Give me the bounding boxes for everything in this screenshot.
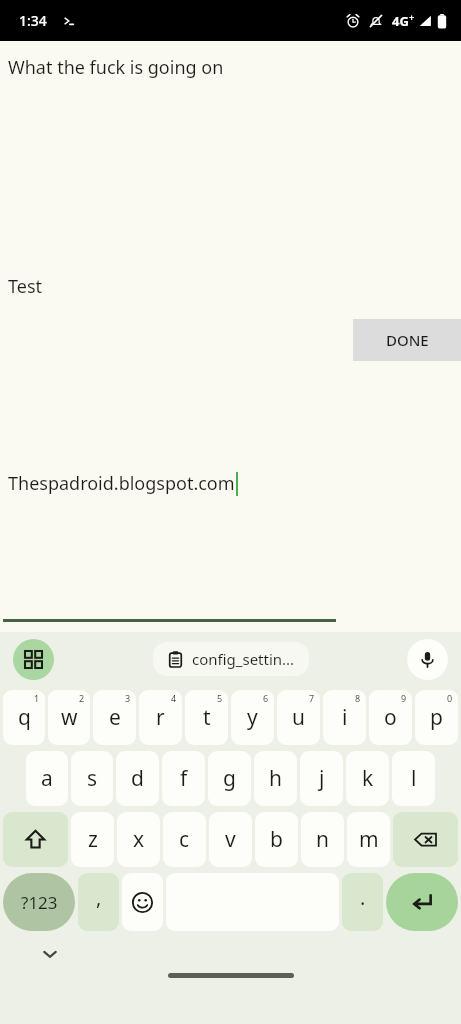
staticText: What the fuck is going on: [8, 55, 224, 80]
staticText: e: [109, 703, 121, 732]
staticText: c: [179, 825, 190, 854]
staticText: d: [131, 764, 144, 793]
button[interactable]: DONE: [353, 319, 461, 361]
staticText: o: [384, 703, 397, 732]
button[interactable]: Features menu: [13, 639, 54, 680]
button[interactable]: c: [163, 812, 206, 867]
staticText: Test: [8, 274, 43, 299]
button[interactable]: ?123: [3, 873, 75, 931]
staticText: p: [430, 703, 443, 732]
staticText: u: [292, 703, 305, 732]
staticText: 3: [125, 692, 131, 704]
staticText: f: [180, 764, 188, 793]
button[interactable]: q: [3, 690, 45, 745]
button[interactable]: l: [392, 751, 435, 806]
button[interactable]: u: [277, 690, 320, 745]
button[interactable]: t: [185, 690, 228, 745]
staticText: Thespadroid.blogspot.com: [8, 471, 235, 496]
staticText: q: [18, 703, 31, 732]
button[interactable]: config_settin...: [153, 642, 309, 676]
staticText: n: [316, 825, 329, 854]
button[interactable]: v: [209, 812, 252, 867]
button[interactable]: Voice input: [407, 639, 448, 680]
staticText: 1:34: [19, 11, 47, 30]
button[interactable]: p: [415, 690, 458, 745]
button[interactable]: a: [26, 751, 68, 806]
staticText: i: [342, 703, 348, 732]
button[interactable]: i: [323, 690, 366, 745]
button[interactable]: Shift: [3, 812, 68, 867]
button[interactable]: b: [255, 812, 298, 867]
button[interactable]: ,: [78, 873, 119, 931]
button[interactable]: Hide keyboard: [32, 936, 68, 972]
staticText: 1: [34, 692, 40, 704]
staticText: 6: [263, 692, 269, 704]
staticText: j: [319, 764, 325, 793]
staticText: 0: [447, 692, 453, 704]
button[interactable]: h: [254, 751, 297, 806]
staticText: z: [88, 825, 98, 854]
staticText: 7: [309, 692, 315, 704]
staticText: k: [362, 764, 374, 793]
staticText: v: [225, 825, 236, 854]
button[interactable]: Backspace: [393, 812, 458, 867]
staticText: y: [247, 703, 258, 732]
staticText: r: [156, 703, 165, 732]
button[interactable]: x: [117, 812, 160, 867]
button[interactable]: s: [71, 751, 113, 806]
staticText: g: [223, 764, 236, 793]
staticText: s: [87, 764, 98, 793]
button[interactable]: e: [93, 690, 136, 745]
button[interactable]: y: [231, 690, 274, 745]
staticText: +: [409, 11, 415, 23]
button[interactable]: m: [347, 812, 390, 867]
staticText: 2: [79, 692, 85, 704]
button[interactable]: .: [342, 873, 383, 931]
staticText: config_settin...: [192, 649, 295, 669]
staticText: .: [360, 884, 366, 911]
button[interactable]: g: [208, 751, 251, 806]
staticText: l: [411, 764, 417, 793]
staticText: 8: [355, 692, 361, 704]
button[interactable]: o: [369, 690, 412, 745]
button[interactable]: k: [346, 751, 389, 806]
staticText: m: [359, 825, 379, 854]
button[interactable]: w: [48, 690, 90, 745]
button[interactable]: Emoji: [122, 873, 163, 931]
staticText: a: [41, 764, 53, 793]
staticText: ?123: [21, 891, 58, 914]
staticText: 9: [401, 692, 407, 704]
staticText: t: [203, 703, 211, 732]
button[interactable]: n: [301, 812, 344, 867]
button[interactable]: z: [71, 812, 114, 867]
button[interactable]: d: [116, 751, 159, 806]
staticText: b: [270, 825, 283, 854]
button[interactable]: r: [139, 690, 182, 745]
button[interactable]: Enter: [386, 873, 458, 931]
staticText: h: [269, 764, 282, 793]
staticText: 4G: [392, 12, 409, 30]
staticText: w: [61, 703, 78, 732]
staticText: x: [133, 825, 145, 854]
button[interactable]: j: [300, 751, 343, 806]
staticText: DONE: [386, 330, 429, 350]
staticText: 5: [217, 692, 223, 704]
staticText: ,: [96, 884, 102, 911]
staticText: 4: [171, 692, 177, 704]
button[interactable]: f: [162, 751, 205, 806]
